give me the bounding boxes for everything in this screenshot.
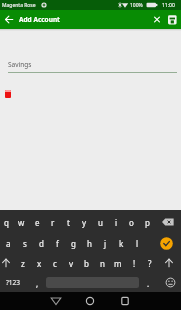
button[interactable]: v <box>62 254 80 272</box>
button[interactable] <box>116 292 134 310</box>
staticText: i <box>115 217 118 228</box>
staticText: e <box>35 217 40 228</box>
staticText: ! <box>133 258 136 269</box>
button[interactable]: o <box>122 213 140 231</box>
staticText: . <box>147 278 150 289</box>
button[interactable]: b <box>77 254 95 272</box>
button[interactable]: x <box>30 254 48 272</box>
staticText: l <box>136 238 139 249</box>
staticText: z <box>21 258 25 269</box>
staticText: q <box>4 217 9 228</box>
button[interactable] <box>47 292 65 310</box>
staticText: ? <box>148 258 152 269</box>
staticText: Add Account <box>19 15 60 24</box>
button[interactable]: e <box>28 213 46 231</box>
staticText: f <box>56 238 59 249</box>
button[interactable]: u <box>91 213 109 231</box>
staticText: y <box>82 217 87 228</box>
button[interactable] <box>157 234 176 253</box>
button[interactable]: d <box>32 234 50 252</box>
button[interactable]: ?123 <box>0 273 26 291</box>
staticText: p <box>145 217 150 228</box>
button[interactable]: g <box>64 234 82 252</box>
staticText: 11:00 <box>162 2 175 9</box>
staticText: Savings <box>8 60 32 69</box>
staticText: b <box>84 258 89 269</box>
button[interactable]: Savings <box>8 60 32 69</box>
staticText: k <box>119 238 124 249</box>
staticText: o <box>129 217 134 228</box>
button[interactable] <box>0 254 15 272</box>
button[interactable]: c <box>46 254 64 272</box>
button[interactable] <box>81 292 99 310</box>
staticText: g <box>71 238 76 249</box>
button[interactable] <box>5 90 11 98</box>
button[interactable]: t <box>59 213 77 231</box>
button[interactable]: k <box>112 234 130 252</box>
button[interactable]: , <box>28 274 46 292</box>
staticText: h <box>87 238 92 249</box>
staticText: v <box>69 258 74 269</box>
staticText: u <box>98 217 103 228</box>
button[interactable]: z <box>14 254 32 272</box>
staticText: m <box>114 258 122 269</box>
button[interactable]: r <box>44 213 62 231</box>
button[interactable]: p <box>138 213 156 231</box>
staticText: r <box>51 217 55 228</box>
button[interactable]: w <box>12 213 30 231</box>
staticText: n <box>100 258 105 269</box>
button[interactable]: n <box>93 254 111 272</box>
staticText: j <box>104 238 107 249</box>
button[interactable]: ? <box>141 254 159 272</box>
button[interactable]: q <box>0 213 15 231</box>
button[interactable]: j <box>96 234 114 252</box>
button[interactable]: i <box>107 213 125 231</box>
button[interactable]: ! <box>125 254 143 272</box>
staticText: x <box>37 258 42 269</box>
button[interactable] <box>148 10 166 29</box>
staticText: d <box>39 238 44 249</box>
button[interactable]: a <box>0 234 17 252</box>
button[interactable]: . <box>139 274 157 292</box>
button[interactable] <box>0 10 19 29</box>
button[interactable] <box>163 10 181 29</box>
staticText: ?123 <box>6 278 20 287</box>
button[interactable]: f <box>48 234 66 252</box>
button[interactable] <box>160 254 178 272</box>
button[interactable]: y <box>75 213 93 231</box>
button[interactable] <box>159 213 177 231</box>
staticText: 100% <box>130 2 143 9</box>
staticText: c <box>53 258 57 269</box>
staticText: a <box>6 238 11 249</box>
staticText: s <box>23 238 27 249</box>
staticText: , <box>36 278 39 289</box>
staticText: Magenta Rose <box>2 2 36 9</box>
button[interactable]: m <box>109 254 127 272</box>
button[interactable]: h <box>80 234 98 252</box>
button[interactable]: s <box>16 234 34 252</box>
button[interactable] <box>161 273 180 292</box>
button[interactable]: l <box>128 234 146 252</box>
staticText: w <box>18 217 25 228</box>
staticText: t <box>67 217 70 228</box>
